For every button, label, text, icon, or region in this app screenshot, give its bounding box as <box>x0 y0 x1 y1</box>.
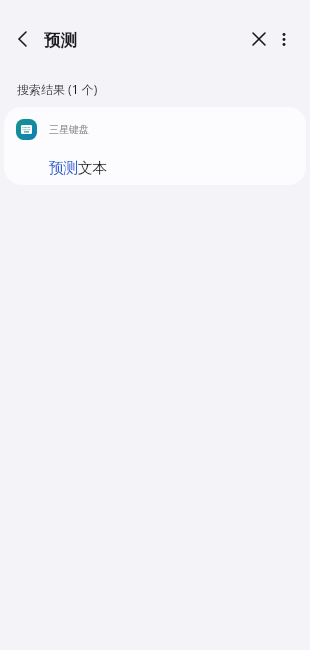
staticText: 搜索结果 (1 个) <box>17 81 98 97</box>
button[interactable]: Back <box>6 22 39 55</box>
button[interactable]: Close search <box>242 22 276 56</box>
staticText: 预测 <box>44 30 77 51</box>
button[interactable]: More options <box>267 22 301 56</box>
staticText: 预测文本 <box>49 159 107 178</box>
staticText: 三星键盘 <box>49 123 89 136</box>
button[interactable]: 三星键盘 <box>4 107 306 185</box>
